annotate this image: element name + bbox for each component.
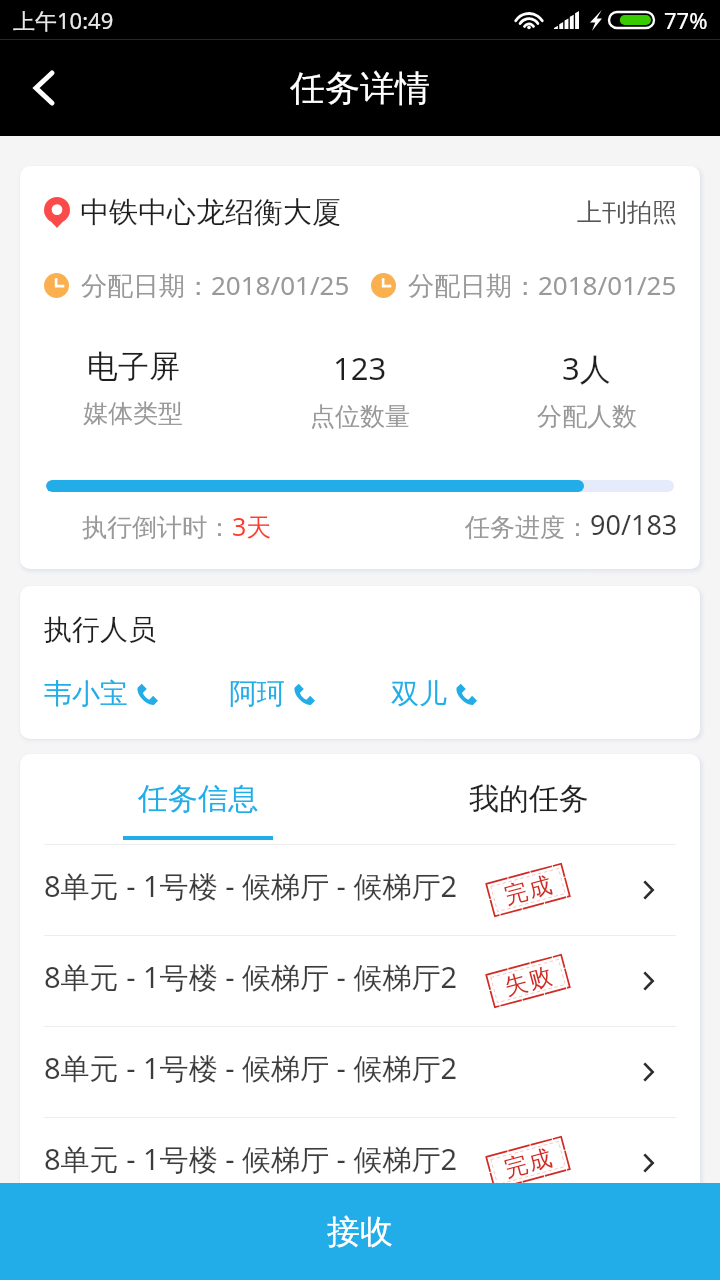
staticText: 点位数量 — [310, 401, 410, 432]
button[interactable]: 韦小宝 — [44, 676, 158, 711]
staticText: 90/183 — [590, 506, 678, 543]
button[interactable]: 接收 — [0, 1183, 720, 1280]
button[interactable]: 8单元 - 1号楼 - 候梯厅 - 候梯厅2 — [20, 1118, 700, 1208]
staticText: 我的任务 — [469, 780, 589, 818]
staticText: 8单元 - 1号楼 - 候梯厅 - 候梯厅2 — [44, 957, 458, 997]
staticText: 双儿 — [391, 676, 447, 711]
staticText: 中铁中心龙绍衡大厦 — [80, 194, 341, 231]
staticText: 分配日期：2018/01/25 — [81, 267, 350, 303]
staticText: 任务详情 — [290, 66, 430, 110]
staticText: 韦小宝 — [44, 676, 128, 711]
staticText: 77% — [664, 5, 708, 35]
staticText: 任务信息 — [138, 780, 258, 818]
staticText: 8单元 - 1号楼 - 候梯厅 - 候梯厅2 — [44, 1048, 458, 1088]
staticText: 执行人员 — [44, 612, 156, 647]
staticText: 分配日期：2018/01/25 — [408, 267, 677, 303]
staticText: 执行倒计时： — [82, 512, 232, 543]
staticText: 完成 — [500, 870, 556, 911]
staticText: 电子屏 — [87, 347, 180, 386]
staticText: 媒体类型 — [83, 398, 183, 429]
button[interactable]: 双儿 — [391, 676, 477, 711]
staticText: 失败 — [500, 961, 556, 1002]
button[interactable]: Back — [0, 40, 88, 136]
staticText: 分配人数 — [537, 401, 637, 432]
button[interactable]: 任务信息 — [38, 754, 358, 844]
staticText: 完成 — [500, 1143, 556, 1184]
staticText: 任务进度： — [465, 512, 590, 543]
staticText: 接收 — [327, 1211, 393, 1253]
staticText: 3人 — [562, 347, 611, 389]
staticText: 8单元 - 1号楼 - 候梯厅 - 候梯厅2 — [44, 1139, 458, 1179]
staticText: 8单元 - 1号楼 - 候梯厅 - 候梯厅2 — [44, 1221, 458, 1261]
staticText: 上刊拍照 — [577, 197, 677, 228]
button[interactable]: 8单元 - 1号楼 - 候梯厅 - 候梯厅2 — [20, 936, 700, 1026]
staticText: 阿珂 — [229, 676, 285, 711]
button[interactable]: 我的任务 — [358, 754, 700, 844]
staticText: 3天 — [232, 509, 272, 543]
staticText: 8单元 - 1号楼 - 候梯厅 - 候梯厅2 — [44, 866, 458, 906]
button[interactable]: 阿珂 — [229, 676, 315, 711]
button[interactable]: 8单元 - 1号楼 - 候梯厅 - 候梯厅2 — [20, 1209, 700, 1280]
staticText: 上午10:49 — [13, 5, 114, 35]
staticText: 123 — [333, 347, 387, 389]
button[interactable]: 8单元 - 1号楼 - 候梯厅 - 候梯厅2 — [20, 1027, 700, 1117]
button[interactable]: 8单元 - 1号楼 - 候梯厅 - 候梯厅2 — [20, 845, 700, 935]
